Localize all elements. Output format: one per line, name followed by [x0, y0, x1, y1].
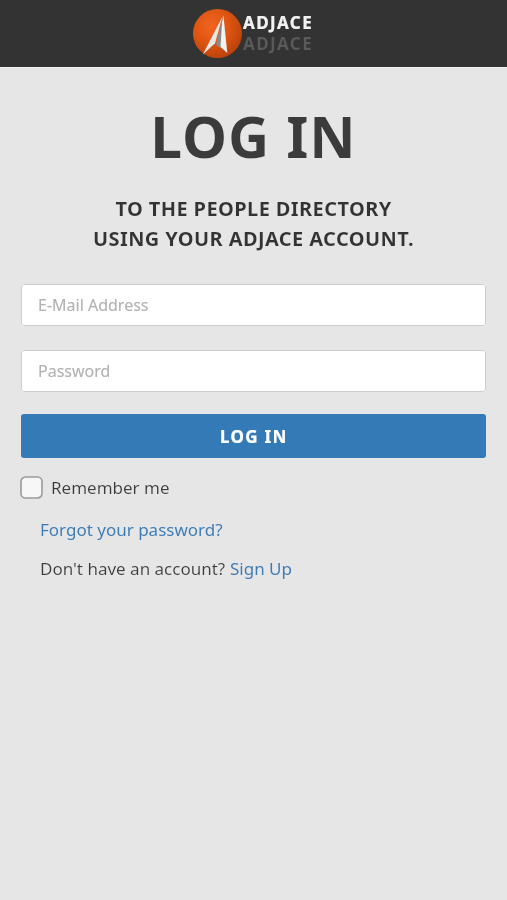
staticText: TO THE PEOPLE DIRECTORY — [0, 195, 507, 222]
staticText: Remember me — [51, 476, 170, 499]
staticText: Forgot your password? — [40, 518, 223, 541]
staticText: E-Mail Address — [38, 294, 149, 316]
button[interactable]: Password — [21, 350, 486, 392]
button[interactable]: LOG IN — [21, 414, 486, 458]
staticText: USING YOUR ADJACE ACCOUNT. — [0, 225, 507, 252]
staticText: Password — [38, 360, 111, 382]
staticText: Sign Up — [230, 557, 292, 580]
button[interactable]: Remember me — [21, 474, 170, 501]
button[interactable]: Sign Up — [230, 557, 292, 580]
staticText: LOG IN — [0, 97, 507, 175]
button[interactable]: E-Mail Address — [21, 284, 486, 326]
staticText: ADJACE — [243, 32, 314, 55]
staticText: LOG IN — [220, 425, 288, 448]
staticText: ADJACE — [243, 11, 314, 34]
other: Adjace logo — [193, 9, 242, 58]
staticText: Don't have an account? — [40, 557, 230, 580]
button[interactable]: Forgot your password? — [21, 515, 242, 544]
